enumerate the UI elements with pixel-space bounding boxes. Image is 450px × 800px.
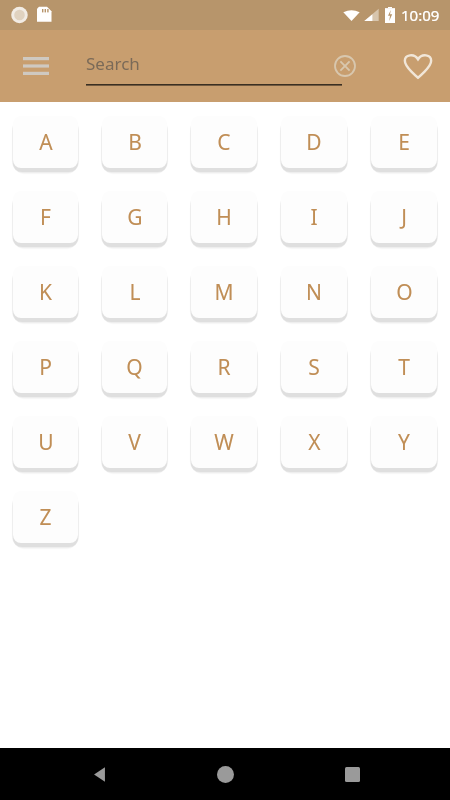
button[interactable]: Home xyxy=(197,748,253,800)
button[interactable]: X xyxy=(281,416,347,468)
button[interactable]: W xyxy=(191,416,257,468)
button[interactable]: J xyxy=(371,191,437,243)
staticText: U xyxy=(38,428,54,457)
staticText: G xyxy=(127,203,143,232)
staticText: Q xyxy=(126,353,143,382)
button[interactable]: Back xyxy=(71,748,127,800)
button[interactable]: Menu xyxy=(12,42,60,90)
button[interactable]: H xyxy=(191,191,257,243)
button[interactable]: B xyxy=(102,116,167,168)
staticText: A xyxy=(39,128,53,157)
staticText: T xyxy=(398,353,410,382)
button[interactable]: T xyxy=(371,341,437,393)
staticText: Y xyxy=(398,428,410,457)
staticText: V xyxy=(128,428,141,457)
button[interactable]: O xyxy=(371,266,437,318)
button[interactable]: U xyxy=(13,416,78,468)
button[interactable]: L xyxy=(102,266,167,318)
button[interactable]: V xyxy=(102,416,167,468)
button[interactable]: C xyxy=(191,116,257,168)
staticText: 10:09 xyxy=(401,5,440,25)
button[interactable]: Q xyxy=(102,341,167,393)
staticText: E xyxy=(398,128,410,157)
button[interactable]: P xyxy=(13,341,78,393)
staticText: L xyxy=(129,278,141,307)
staticText: B xyxy=(128,128,142,157)
button[interactable]: I xyxy=(281,191,347,243)
button[interactable]: Clear search xyxy=(322,43,368,89)
button[interactable]: E xyxy=(371,116,437,168)
staticText: F xyxy=(40,203,51,232)
button[interactable]: Recent apps xyxy=(324,748,380,800)
button[interactable]: S xyxy=(281,341,347,393)
staticText: J xyxy=(401,203,407,232)
staticText: O xyxy=(396,278,413,307)
staticText: X xyxy=(308,428,321,457)
staticText: S xyxy=(308,353,320,382)
button[interactable]: Search xyxy=(86,46,342,86)
button[interactable]: M xyxy=(191,266,257,318)
button[interactable]: R xyxy=(191,341,257,393)
button[interactable]: Y xyxy=(371,416,437,468)
staticText: Search xyxy=(86,52,140,75)
staticText: R xyxy=(217,353,231,382)
staticText: I xyxy=(310,203,318,232)
staticText: Z xyxy=(39,503,52,532)
staticText: H xyxy=(216,203,232,232)
staticText: M xyxy=(214,278,234,307)
staticText: N xyxy=(306,278,322,307)
button[interactable]: N xyxy=(281,266,347,318)
button[interactable]: K xyxy=(13,266,78,318)
staticText: K xyxy=(39,278,52,307)
button[interactable]: A xyxy=(13,116,78,168)
staticText: C xyxy=(217,128,231,157)
staticText: D xyxy=(306,128,322,157)
button[interactable]: G xyxy=(102,191,167,243)
button[interactable]: D xyxy=(281,116,347,168)
staticText: W xyxy=(214,428,234,457)
button[interactable]: Favorites xyxy=(394,42,442,90)
staticText: P xyxy=(39,353,52,382)
button[interactable]: F xyxy=(13,191,78,243)
button[interactable]: Z xyxy=(13,491,78,543)
